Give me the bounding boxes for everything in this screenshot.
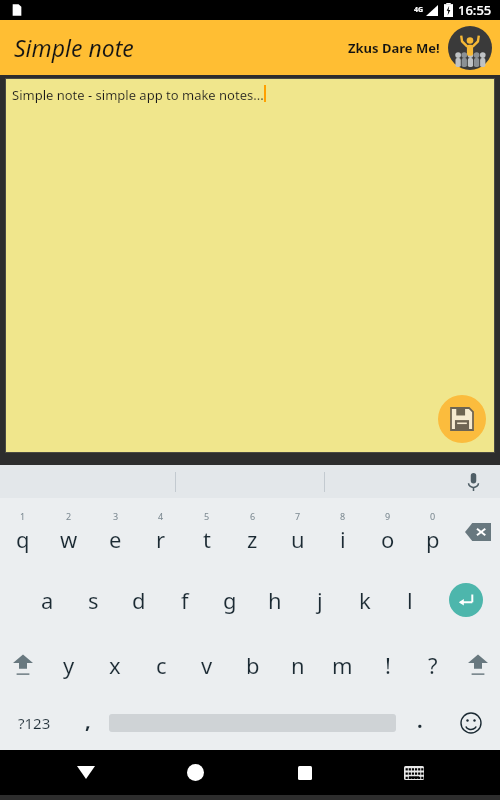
staticText: b (246, 650, 260, 680)
staticText: u (291, 524, 305, 554)
staticText: f (181, 585, 189, 615)
staticText: 4G (414, 5, 424, 15)
staticText: 16:55 (458, 1, 492, 19)
button[interactable]: b (230, 634, 275, 696)
button[interactable]: , (68, 696, 107, 750)
staticText: 5 (204, 510, 210, 522)
button[interactable]: c (138, 634, 184, 696)
staticText: d (132, 585, 146, 615)
button[interactable]: Zkus Dare Me! (348, 26, 492, 70)
button[interactable]: Simple note - simple app to make notes..… (5, 78, 495, 453)
button[interactable]: 0 (410, 498, 455, 566)
button[interactable]: Shift (0, 634, 46, 696)
button[interactable]: 4 (138, 498, 184, 566)
button[interactable]: x (92, 634, 138, 696)
staticText: h (268, 585, 282, 615)
staticText: k (359, 585, 371, 615)
button[interactable]: f (162, 566, 207, 634)
button[interactable]: n (275, 634, 320, 696)
staticText: 7 (295, 510, 301, 522)
staticText: i (340, 524, 346, 554)
staticText: ! (385, 650, 391, 680)
button[interactable]: Voice input (460, 469, 486, 495)
button[interactable]: j (297, 566, 342, 634)
staticText: e (109, 524, 122, 554)
button[interactable]: v (184, 634, 230, 696)
staticText: q (16, 524, 30, 554)
staticText: 4 (158, 510, 164, 522)
button[interactable]: 5 (184, 498, 230, 566)
staticText: 9 (385, 510, 391, 522)
staticText: 0 (430, 510, 436, 522)
staticText: m (332, 650, 353, 680)
staticText: ? (428, 650, 438, 680)
button[interactable]: ?123 (0, 696, 68, 750)
button[interactable]: y (46, 634, 92, 696)
button[interactable]: 3 (92, 498, 138, 566)
staticText: 8 (340, 510, 346, 522)
staticText: x (109, 650, 121, 680)
button[interactable]: Emoji (442, 696, 500, 750)
staticText: z (247, 524, 258, 554)
staticText: g (223, 585, 237, 615)
staticText: a (41, 585, 54, 615)
button[interactable]: Recent apps (282, 750, 328, 795)
button[interactable]: Space (107, 696, 398, 750)
button[interactable]: m (320, 634, 365, 696)
staticText: p (426, 524, 440, 554)
staticText: v (201, 650, 213, 680)
button[interactable]: Enter (432, 566, 500, 634)
button[interactable]: Back (63, 750, 109, 795)
staticText: 6 (250, 510, 256, 522)
button[interactable]: ! (365, 634, 410, 696)
button[interactable]: 2 (46, 498, 92, 566)
button[interactable]: 1 (0, 498, 46, 566)
staticText: o (381, 524, 395, 554)
button[interactable]: g (207, 566, 252, 634)
staticText: Simple note - simple app to make notes..… (12, 86, 264, 104)
staticText: 2 (66, 510, 72, 522)
staticText: ?123 (18, 713, 51, 733)
staticText: c (156, 650, 167, 680)
button[interactable]: 9 (365, 498, 410, 566)
button[interactable]: Home (172, 750, 218, 795)
button[interactable]: h (252, 566, 297, 634)
button[interactable]: Shift (455, 634, 500, 696)
button[interactable]: a (24, 566, 70, 634)
staticText: y (63, 650, 75, 680)
button[interactable]: Switch keyboard (391, 750, 437, 795)
staticText: j (317, 585, 323, 615)
staticText: . (417, 707, 423, 734)
button[interactable]: . (398, 696, 442, 750)
button[interactable]: 6 (230, 498, 275, 566)
button[interactable]: Backspace (455, 498, 500, 566)
staticText: s (88, 585, 99, 615)
button[interactable]: l (387, 566, 432, 634)
button[interactable]: k (342, 566, 387, 634)
button[interactable]: ? (410, 634, 455, 696)
button[interactable]: Save note (438, 395, 486, 443)
staticText: 3 (113, 510, 119, 522)
staticText: n (291, 650, 305, 680)
other: Dare Me profile (448, 26, 492, 70)
staticText: r (156, 524, 166, 554)
staticText: Simple note (14, 32, 134, 63)
staticText: , (85, 707, 91, 734)
staticText: Zkus Dare Me! (348, 39, 440, 57)
button[interactable]: d (116, 566, 162, 634)
button[interactable]: 7 (275, 498, 320, 566)
staticText: w (60, 524, 78, 554)
staticText: l (407, 585, 413, 615)
staticText: t (203, 524, 211, 554)
button[interactable]: 8 (320, 498, 365, 566)
staticText: 1 (20, 510, 26, 522)
button[interactable]: s (70, 566, 116, 634)
